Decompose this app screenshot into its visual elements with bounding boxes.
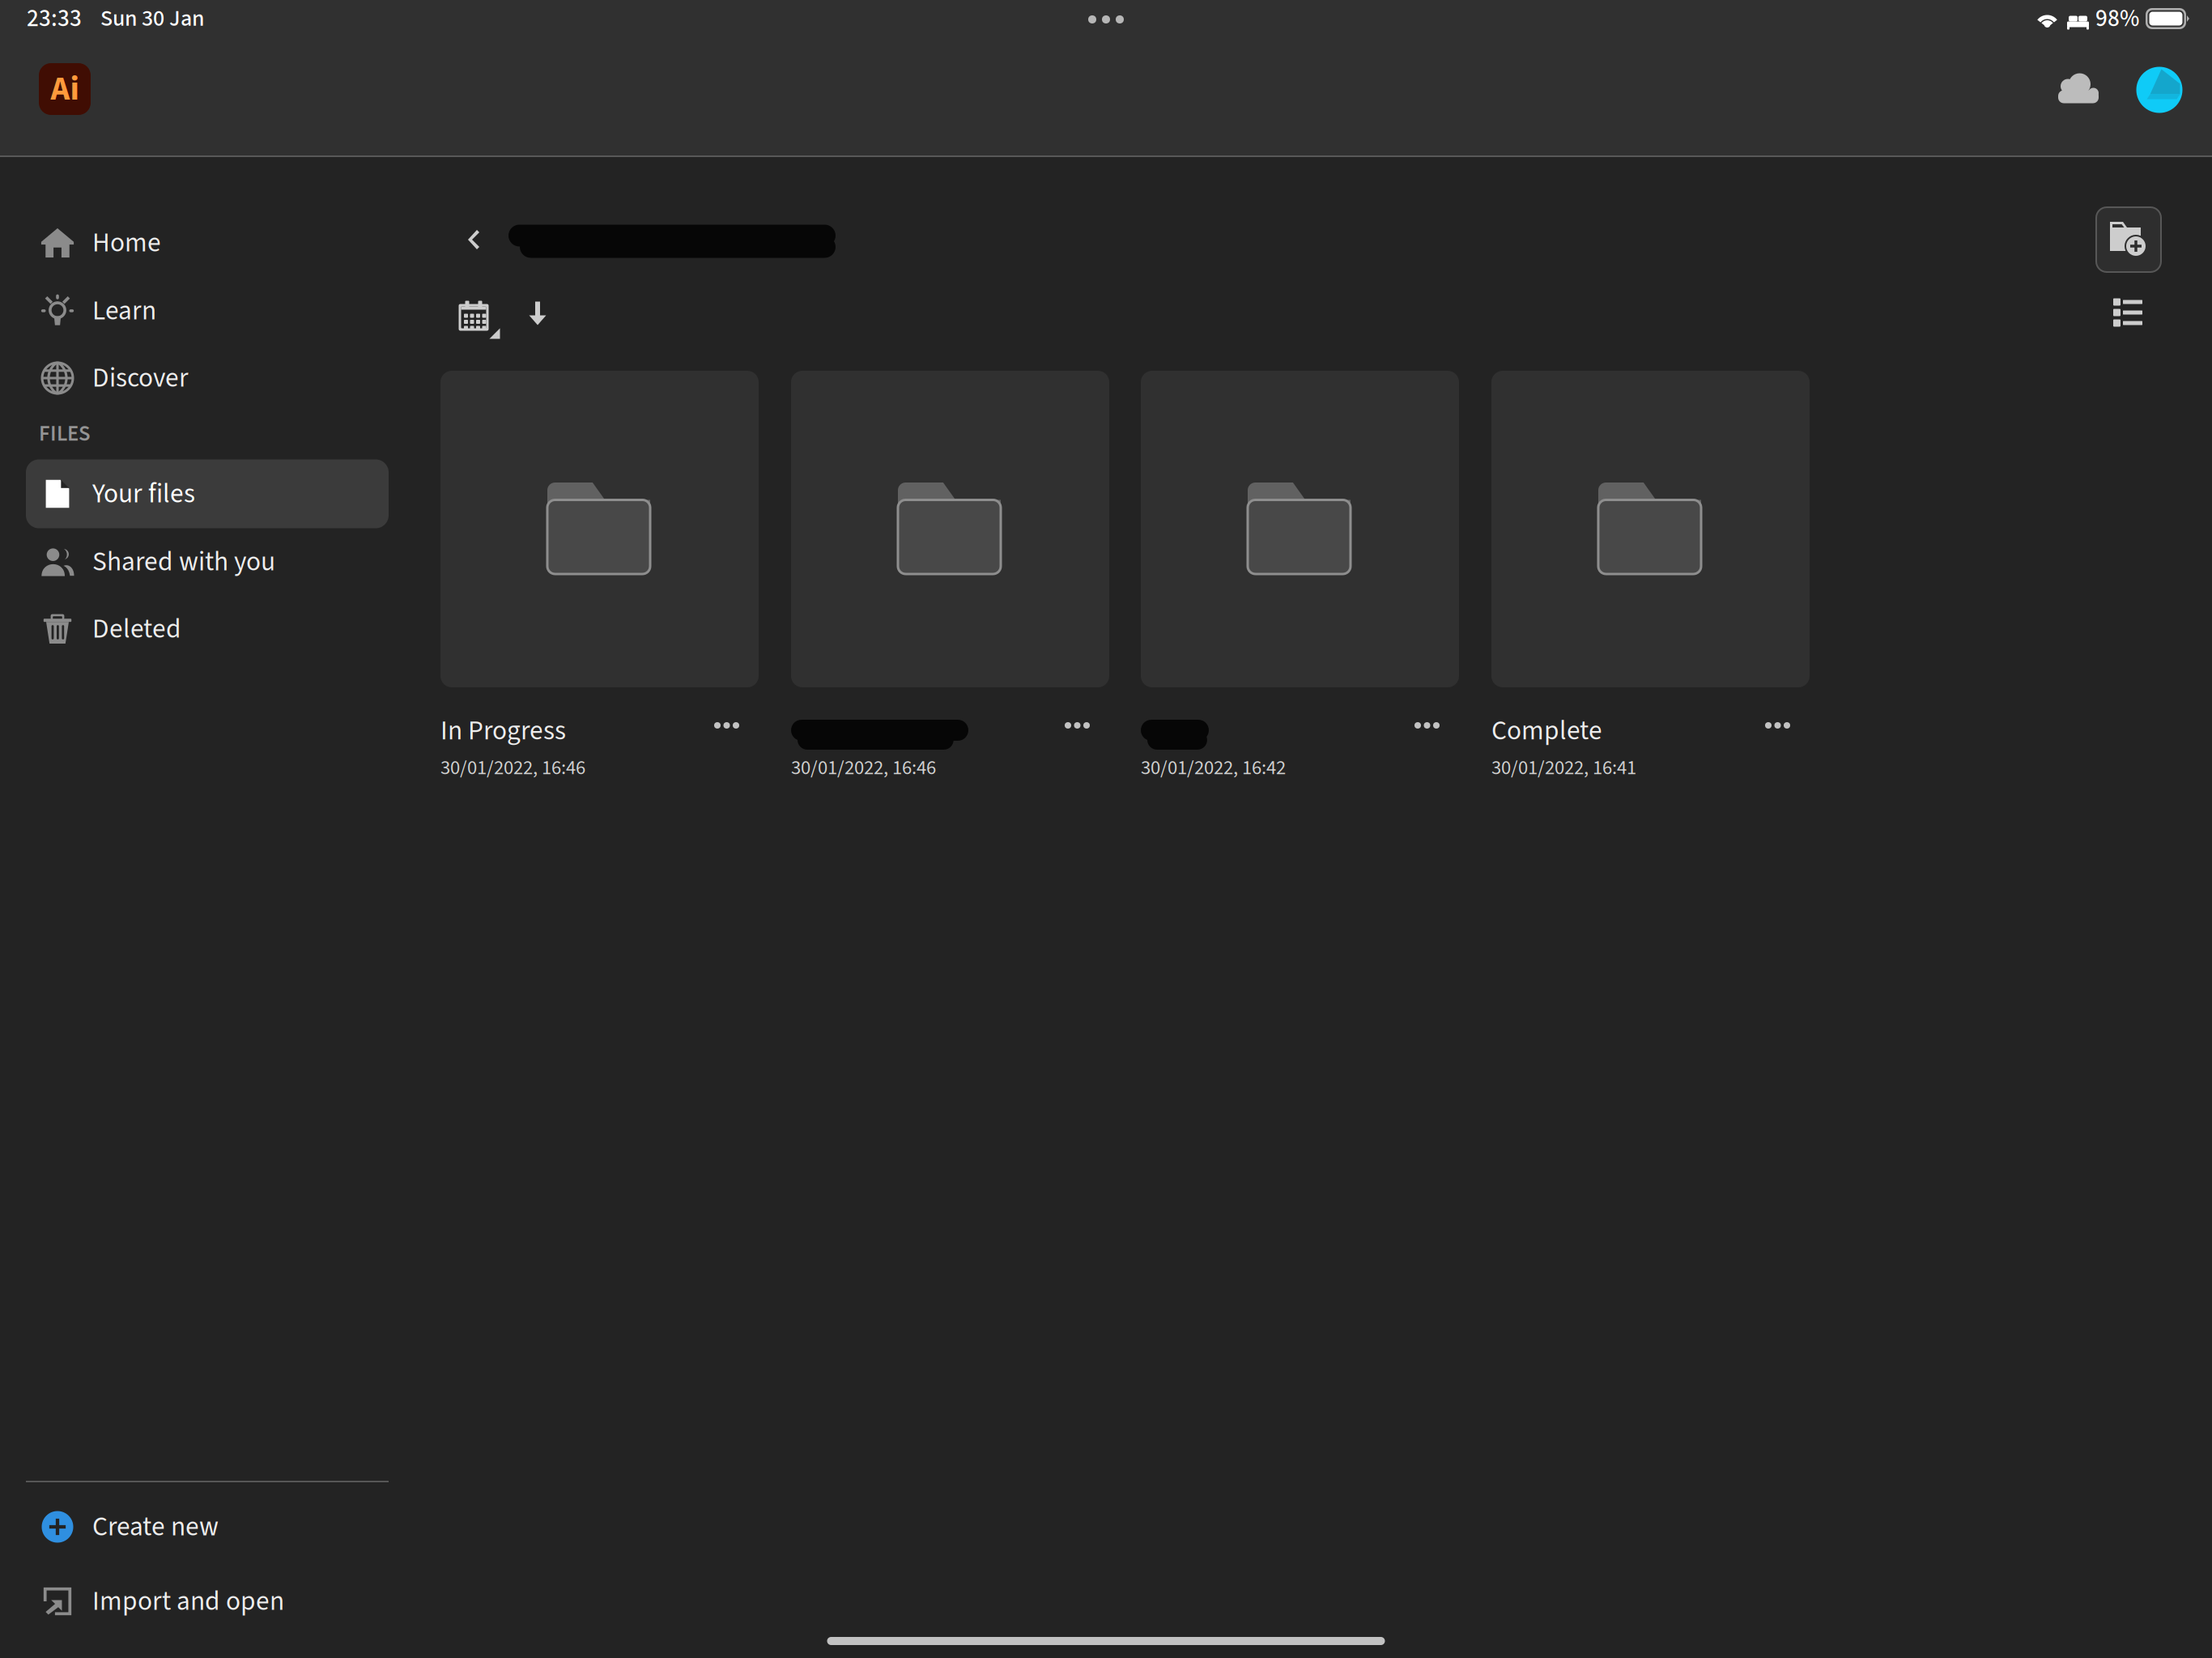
button[interactable]: Account <box>2136 67 2182 113</box>
button[interactable]: Cloud documents <box>2058 79 2099 105</box>
staticText: Deleted <box>92 610 181 648</box>
button[interactable]: Folder, 30/01/2022, 16:42 <box>1141 371 1459 792</box>
button[interactable]: Import and open <box>26 1567 389 1636</box>
button[interactable]: Illustrator home <box>39 63 91 115</box>
button[interactable]: Sort descending <box>517 292 559 334</box>
staticText: Import and open <box>92 1582 284 1621</box>
staticText: Create new <box>92 1508 219 1546</box>
button[interactable]: Folder, 30/01/2022, 16:46 <box>791 371 1109 792</box>
staticText: 30/01/2022, 16:42 <box>1141 754 1286 782</box>
staticText: Home <box>92 224 161 262</box>
button[interactable]: More options <box>1755 705 1800 746</box>
button[interactable]: Shared with you <box>26 527 389 596</box>
button[interactable]: More options <box>1055 705 1100 746</box>
button[interactable]: More options <box>704 705 749 746</box>
staticText: 30/01/2022, 16:46 <box>440 754 585 782</box>
staticText: 23:33 <box>27 2 82 36</box>
staticText: FILES <box>39 419 91 449</box>
button[interactable]: Learn <box>26 276 389 345</box>
button[interactable]: Deleted <box>26 595 389 663</box>
button[interactable]: Discover <box>26 344 389 412</box>
button[interactable]: Sort by date <box>451 292 496 334</box>
staticText: Learn <box>92 292 156 330</box>
button[interactable]: Back <box>450 215 497 265</box>
button[interactable]: Switch to list view <box>2103 289 2153 336</box>
staticText: Discover <box>92 359 189 397</box>
staticText: Ai <box>51 65 79 113</box>
button[interactable]: Home <box>26 208 389 277</box>
button[interactable]: More options <box>1405 705 1449 746</box>
staticText: 30/01/2022, 16:46 <box>791 754 936 782</box>
button[interactable]: Create new <box>26 1492 389 1561</box>
staticText: 30/01/2022, 16:41 <box>1491 754 1636 782</box>
button[interactable]: New folder <box>2096 207 2161 272</box>
button[interactable]: In Progress, 30/01/2022, 16:46 <box>440 371 759 792</box>
button[interactable]: Your files <box>26 459 389 528</box>
staticText: Shared with you <box>92 543 275 581</box>
staticText: Complete <box>1491 712 1602 750</box>
staticText: Your files <box>92 475 195 513</box>
staticText: Sun 30 Jan <box>100 3 204 35</box>
staticText: In Progress <box>440 712 566 750</box>
staticText: 98% <box>2095 2 2139 36</box>
button[interactable]: Complete, 30/01/2022, 16:41 <box>1491 371 1810 792</box>
